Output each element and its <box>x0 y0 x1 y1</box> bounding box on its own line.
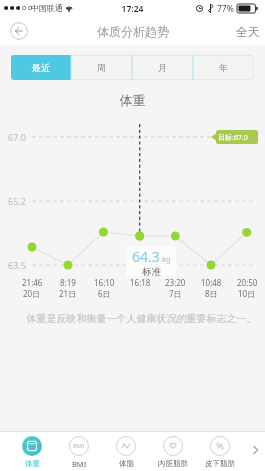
staticText: 8日 <box>205 288 218 299</box>
staticText: 16:18 <box>130 277 151 288</box>
staticText: kg <box>162 254 171 264</box>
staticText: 体重是反映和衡量一个人健康状况的重要标志之一。 <box>9 312 265 325</box>
staticText: 最近 <box>32 62 50 73</box>
button[interactable]: 全天 <box>226 20 265 43</box>
staticText: 年 <box>219 62 228 73</box>
button[interactable]: 内脏脂肪 <box>151 432 195 471</box>
staticText: 皮下脂肪 <box>205 459 235 468</box>
staticText: 月 <box>158 62 167 73</box>
button[interactable]: More <box>247 440 263 456</box>
staticText: 6日 <box>98 288 111 299</box>
staticText: 20:50 <box>237 277 258 288</box>
staticText: 全天 <box>236 24 260 39</box>
staticText: 体重 <box>25 459 40 468</box>
button[interactable]: 月 <box>132 55 193 80</box>
staticText: 标准 <box>142 266 161 277</box>
staticText: 21:46 <box>22 277 43 288</box>
staticText: 10:48 <box>201 277 222 288</box>
staticText: 周 <box>97 62 106 73</box>
button[interactable]: 体重 <box>10 432 54 471</box>
staticText: 16:10 <box>94 277 115 288</box>
staticText: 21日 <box>59 288 77 299</box>
staticText: 23:20 <box>165 277 186 288</box>
staticText: 10日 <box>238 288 256 299</box>
button[interactable]: 年 <box>193 55 254 80</box>
staticText: 7日 <box>169 288 182 299</box>
staticText: 中国联通 <box>31 3 63 13</box>
staticText: 内脏脂肪 <box>158 459 188 468</box>
button[interactable]: BMI <box>57 432 101 471</box>
staticText: 64.3 <box>132 247 160 266</box>
button[interactable]: 皮下脂肪 <box>198 432 242 471</box>
button[interactable]: 最近 <box>11 55 71 80</box>
button[interactable]: Back <box>10 22 28 40</box>
staticText: 20日 <box>23 288 41 299</box>
staticText: 8:19 <box>60 277 76 288</box>
staticText: 65.2 <box>8 195 26 207</box>
button[interactable]: 周 <box>71 55 132 80</box>
staticText: 目标:67.0 <box>218 133 248 143</box>
staticText: BMI <box>73 442 85 450</box>
staticText: BMI <box>72 459 87 469</box>
staticText: 63.5 <box>8 259 26 271</box>
staticText: 体质分析趋势 <box>97 24 169 39</box>
button[interactable]: 体脂 <box>104 432 148 471</box>
staticText: 17:24 <box>0 3 265 15</box>
staticText: 体脂 <box>119 459 134 468</box>
staticText: 67.0 <box>8 131 26 143</box>
staticText: 77% <box>217 3 234 15</box>
staticText: 体重 <box>0 92 265 108</box>
